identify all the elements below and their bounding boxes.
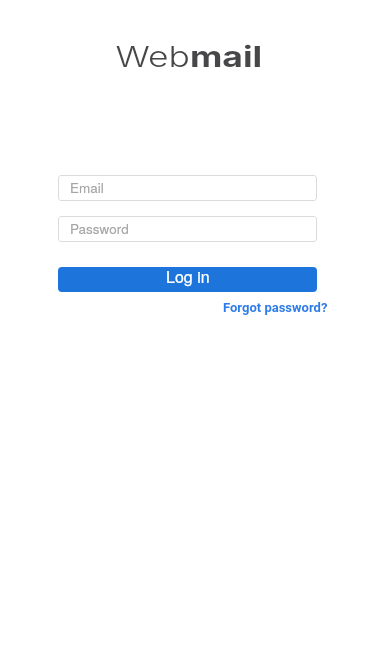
staticText: Webmail (115, 39, 262, 73)
button[interactable]: Password (58, 216, 317, 242)
button[interactable]: Forgot password? (223, 300, 328, 315)
staticText: Password (70, 219, 129, 238)
button[interactable]: Email (58, 175, 317, 201)
staticText: Email (70, 178, 104, 197)
staticText: Log in (166, 267, 210, 288)
button[interactable]: Log in (58, 267, 317, 292)
